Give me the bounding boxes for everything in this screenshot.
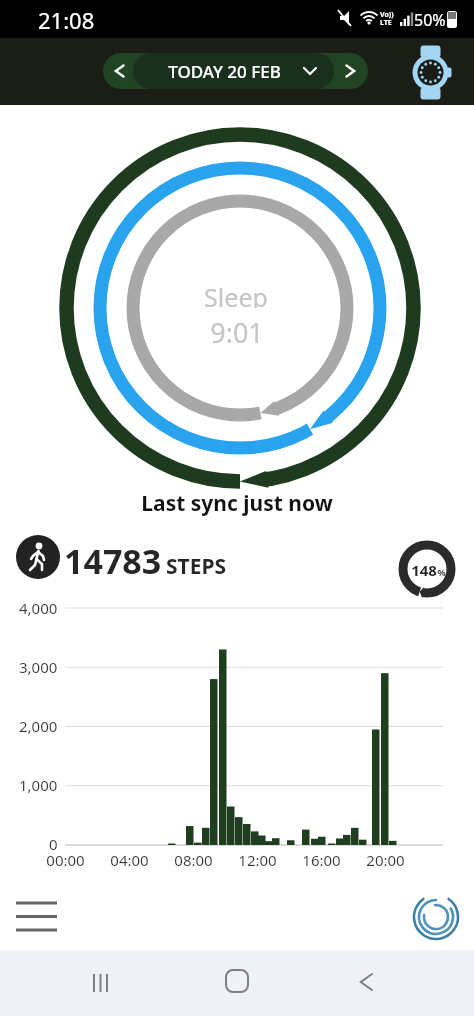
staticText: 9:01 [210, 314, 264, 344]
staticText: 3,000 [19, 657, 58, 677]
staticText: TODAY 20 FEB [168, 60, 281, 83]
staticText: STEPS [166, 552, 227, 580]
staticText: 00:00 [46, 850, 85, 870]
staticText: % [437, 566, 446, 578]
staticText: 21:08 [38, 5, 95, 33]
staticText: 50% [414, 9, 446, 31]
button[interactable] [133, 53, 334, 89]
staticText: 12:00 [238, 850, 277, 870]
button[interactable] [10, 895, 66, 941]
staticText: Sleep [204, 280, 268, 308]
button[interactable] [404, 44, 458, 102]
staticText: 20:00 [366, 850, 405, 870]
staticText: 4,000 [19, 598, 58, 618]
staticText: 2,000 [19, 716, 58, 736]
staticText: 14783 [64, 538, 162, 578]
button[interactable] [211, 960, 263, 1006]
staticText: 08:00 [174, 850, 213, 870]
staticText: 0 [49, 834, 58, 854]
button[interactable] [408, 889, 464, 945]
staticText: 148 [411, 560, 437, 580]
button[interactable] [75, 960, 127, 1006]
staticText: 16:00 [302, 850, 341, 870]
button[interactable] [103, 53, 368, 89]
staticText: 04:00 [110, 850, 149, 870]
staticText: Vo)) LTE [380, 10, 394, 27]
button[interactable] [338, 960, 390, 1006]
staticText: Last sync just now [141, 489, 333, 517]
staticText: 1,000 [19, 775, 58, 795]
